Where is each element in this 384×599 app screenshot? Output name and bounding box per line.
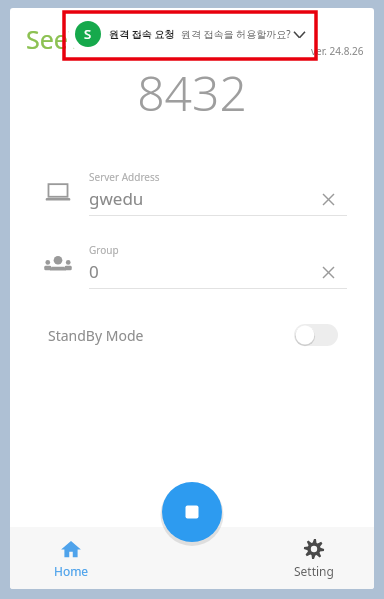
staticText: SeeTalk: [26, 22, 114, 56]
staticText: 원격 접속 요청: [109, 27, 175, 41]
staticText: S: [84, 25, 92, 43]
button[interactable]: Home: [10, 527, 132, 589]
button[interactable]: Setting: [253, 527, 374, 589]
staticText: 8432: [137, 60, 247, 124]
staticText: 0: [89, 260, 99, 283]
button[interactable]: Expand: [291, 25, 308, 43]
button[interactable]: Clear: [318, 189, 338, 209]
button[interactable]: Stop: [159, 479, 225, 545]
button[interactable]: StandBy Mode: [10, 315, 374, 355]
button[interactable]: Server Address: [10, 166, 374, 218]
staticText: Server Address: [89, 170, 160, 184]
button[interactable]: Clear: [318, 262, 338, 282]
staticText: ver. 24.8.26: [311, 44, 364, 58]
button[interactable]: S: [68, 14, 318, 54]
staticText: gwedu: [89, 187, 144, 210]
button[interactable]: Group: [10, 239, 374, 291]
staticText: 원격 접속을 허용할까요?: [181, 27, 291, 41]
staticText: Setting: [294, 563, 334, 579]
staticText: Home: [54, 563, 89, 579]
staticText: StandBy Mode: [48, 326, 144, 345]
staticText: Group: [89, 243, 119, 257]
